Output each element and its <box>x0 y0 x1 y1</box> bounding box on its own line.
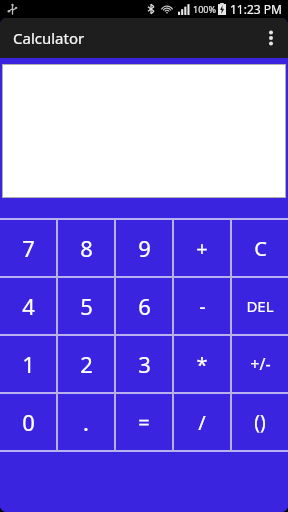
staticText: 7 <box>22 233 35 263</box>
staticText: 4 <box>22 291 35 321</box>
button[interactable]: * <box>174 336 230 392</box>
staticText: 2 <box>80 349 93 379</box>
staticText: 0 <box>22 407 35 437</box>
button[interactable]: DEL <box>232 278 288 334</box>
staticText: Calculator <box>13 28 85 48</box>
button[interactable]: . <box>58 394 114 450</box>
button[interactable]: - <box>174 278 230 334</box>
button[interactable]: 6 <box>116 278 172 334</box>
staticText: +/- <box>250 353 271 375</box>
staticText: DEL <box>246 296 274 316</box>
button[interactable]: + <box>174 220 230 276</box>
button[interactable] <box>2 64 286 198</box>
button[interactable]: 7 <box>0 220 56 276</box>
staticText: () <box>254 409 266 435</box>
button[interactable]: 0 <box>0 394 56 450</box>
button[interactable]: 1 <box>0 336 56 392</box>
button[interactable]: More options <box>254 18 288 58</box>
staticText: 3 <box>138 349 151 379</box>
button[interactable]: +/- <box>232 336 288 392</box>
button[interactable]: () <box>232 394 288 450</box>
button[interactable]: = <box>116 394 172 450</box>
button[interactable]: 4 <box>0 278 56 334</box>
button[interactable]: 9 <box>116 220 172 276</box>
staticText: 11:23 PM <box>230 1 282 17</box>
staticText: 8 <box>80 233 93 263</box>
staticText: 1 <box>22 349 35 379</box>
button[interactable]: 8 <box>58 220 114 276</box>
button[interactable]: 3 <box>116 336 172 392</box>
staticText: * <box>196 351 208 378</box>
button[interactable]: / <box>174 394 230 450</box>
staticText: C <box>254 235 267 262</box>
staticText: 9 <box>138 233 151 263</box>
staticText: 5 <box>80 291 93 321</box>
button[interactable]: C <box>232 220 288 276</box>
staticText: - <box>199 293 206 320</box>
staticText: + <box>196 235 208 262</box>
button[interactable]: 5 <box>58 278 114 334</box>
staticText: = <box>138 409 150 436</box>
staticText: 100% <box>193 3 216 15</box>
staticText: . <box>83 407 89 437</box>
staticText: 6 <box>138 291 151 321</box>
button[interactable]: 2 <box>58 336 114 392</box>
staticText: / <box>198 409 206 436</box>
